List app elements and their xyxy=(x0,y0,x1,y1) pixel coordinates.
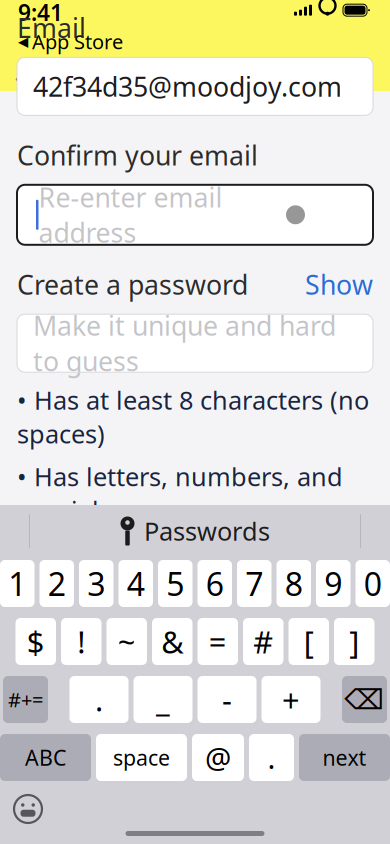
button[interactable]: Re-enter email address xyxy=(17,185,373,245)
button[interactable]: [ xyxy=(288,618,329,665)
staticText: _ xyxy=(156,679,170,720)
button[interactable]: 6 xyxy=(197,560,232,607)
button[interactable]: 4 xyxy=(118,560,153,607)
staticText: • Has at least 8 characters (no spaces) xyxy=(17,383,369,450)
staticText: = xyxy=(209,621,227,662)
button[interactable]: ! xyxy=(61,618,101,665)
button[interactable]: Show xyxy=(305,267,373,302)
staticText: next xyxy=(322,743,366,772)
staticText: Show xyxy=(305,267,373,302)
staticText: Make it unique and hard to guess xyxy=(33,308,336,379)
staticText: Create a password xyxy=(17,267,248,302)
button[interactable]: . xyxy=(249,734,294,781)
staticText: App Store xyxy=(32,28,123,55)
staticText: 2 xyxy=(48,562,66,605)
staticText: @ xyxy=(205,738,231,777)
staticText: 6 xyxy=(206,562,224,605)
staticText: 4 xyxy=(127,562,145,605)
staticText: Sign up xyxy=(148,60,241,94)
staticText: space xyxy=(113,743,170,772)
button[interactable]: Emoji xyxy=(8,789,48,829)
staticText: ⌫ xyxy=(344,684,384,715)
button[interactable]: next xyxy=(299,734,390,781)
button[interactable]: 8 xyxy=(276,560,311,607)
button[interactable]: space xyxy=(96,734,187,781)
staticText: 9 xyxy=(324,562,342,605)
button[interactable]: 5 xyxy=(158,560,192,607)
button[interactable]: = xyxy=(197,618,238,665)
staticText: ❮ xyxy=(11,60,36,93)
button[interactable]: 42f34d35@moodjoy.com xyxy=(17,57,373,115)
staticText: Passwords xyxy=(144,514,270,548)
button[interactable]: & xyxy=(152,618,192,665)
button[interactable]: ABC xyxy=(0,734,91,781)
staticText: characters xyxy=(17,534,140,567)
staticText: ◀ xyxy=(18,34,28,49)
button[interactable]: + xyxy=(261,676,320,723)
button[interactable]: 0 xyxy=(355,560,390,607)
button[interactable]: 9 xyxy=(316,560,350,607)
button[interactable]: 1 xyxy=(0,560,34,607)
staticText: [ xyxy=(304,621,314,662)
button[interactable]: _ xyxy=(133,676,192,723)
button[interactable]: . xyxy=(69,676,128,723)
button[interactable]: Back xyxy=(2,55,46,99)
staticText: 8 xyxy=(285,562,303,605)
staticText: ] xyxy=(349,621,359,662)
staticText: 0 xyxy=(364,562,382,605)
button[interactable]: @ xyxy=(192,734,244,781)
staticText: # xyxy=(253,621,273,662)
button[interactable]: $ xyxy=(15,618,56,665)
staticText: • Has letters, numbers, and special xyxy=(17,459,343,527)
staticText: 42f34d35@moodjoy.com xyxy=(33,69,342,104)
staticText: 1 xyxy=(8,562,26,605)
button[interactable]: Make it unique and hard to guess xyxy=(17,314,373,372)
staticText: ~ xyxy=(118,621,136,662)
staticText: #+= xyxy=(8,686,43,713)
staticText: Email xyxy=(17,10,86,45)
button[interactable]: ◀ xyxy=(18,28,123,55)
staticText: 7 xyxy=(245,562,263,605)
button[interactable]: # xyxy=(243,618,283,665)
button[interactable]: Passwords xyxy=(0,505,390,557)
staticText: & xyxy=(161,621,183,662)
button[interactable]: #+= xyxy=(3,676,48,723)
staticText: ABC xyxy=(25,743,66,772)
staticText: . xyxy=(267,738,275,777)
button[interactable]: 7 xyxy=(237,560,271,607)
staticText: + xyxy=(282,679,300,720)
staticText: 5 xyxy=(166,562,184,605)
staticText: 3 xyxy=(87,562,105,605)
staticText: Re-enter email address xyxy=(38,179,222,250)
staticText: • Not easy to guess xyxy=(17,576,245,610)
staticText: Confirm your email xyxy=(17,137,258,173)
staticText: 9:41 xyxy=(18,0,63,27)
staticText: ! xyxy=(77,621,85,662)
staticText: $ xyxy=(27,621,45,662)
staticText: - xyxy=(222,679,232,720)
button[interactable]: 3 xyxy=(79,560,113,607)
button[interactable]: 2 xyxy=(39,560,74,607)
staticText: . xyxy=(95,679,103,720)
button[interactable]: ] xyxy=(334,618,374,665)
button[interactable]: - xyxy=(197,676,256,723)
button[interactable]: ~ xyxy=(106,618,147,665)
button[interactable]: Delete xyxy=(342,676,387,723)
